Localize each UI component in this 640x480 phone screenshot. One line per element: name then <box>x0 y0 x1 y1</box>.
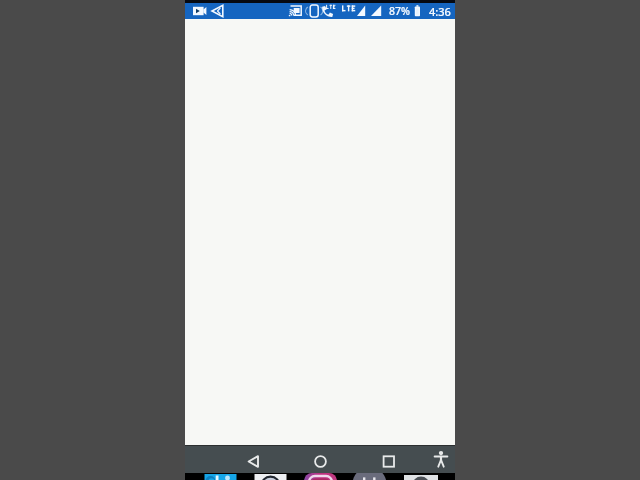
button[interactable]: Back <box>240 445 268 473</box>
button[interactable]: Accessibility <box>427 445 455 473</box>
staticText: 87% <box>389 4 410 18</box>
button[interactable]: Home <box>307 445 335 473</box>
button[interactable]: Recent apps <box>375 445 403 473</box>
staticText: 4:36 <box>429 4 451 19</box>
